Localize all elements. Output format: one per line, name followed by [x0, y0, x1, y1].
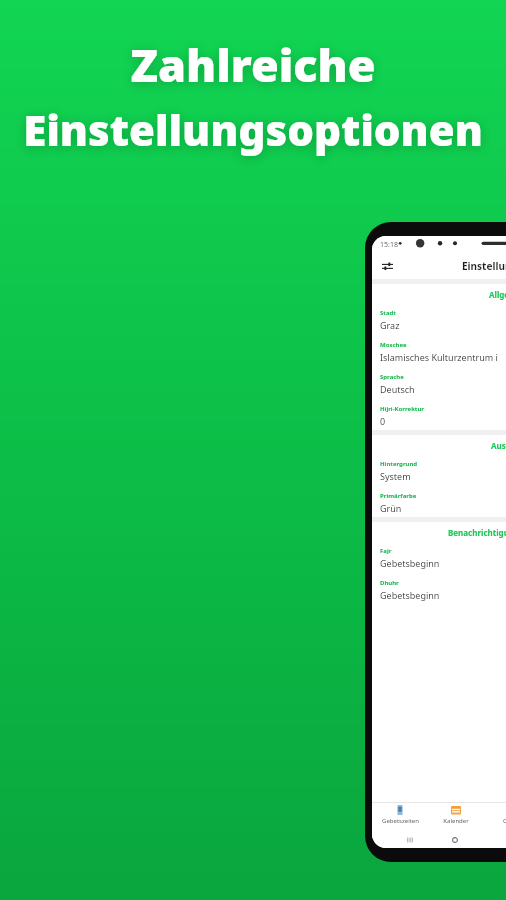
button[interactable]: Dhuhr — [372, 572, 506, 604]
button[interactable]: Recents — [403, 833, 417, 847]
staticText: Graz — [380, 319, 400, 331]
staticText: Gebetszeiten — [382, 817, 419, 825]
button[interactable]: Fajr — [372, 540, 506, 572]
button[interactable]: Gebetszeiten — [372, 802, 428, 832]
staticText: Zahlreiche — [130, 34, 376, 95]
staticText: Gebetsbeginn — [380, 557, 440, 569]
staticText: Sprache — [380, 373, 404, 381]
staticText: Qibla — [503, 817, 506, 825]
staticText: Einstellungen — [462, 259, 506, 273]
button[interactable]: Kalender — [428, 802, 483, 832]
staticText: Hintergrund — [380, 460, 418, 468]
button[interactable]: Stadt — [372, 302, 506, 334]
staticText: Fajr — [380, 547, 392, 555]
button[interactable]: Filter — [379, 258, 395, 274]
button[interactable]: Moschee — [372, 334, 506, 366]
staticText: Islamisches Kulturzentrum i — [380, 351, 498, 363]
button[interactable]: Primärfarbe — [372, 485, 506, 517]
staticText: Dhuhr — [380, 579, 399, 587]
staticText: 0 — [380, 415, 386, 427]
button[interactable]: Hijri-Korrektur — [372, 398, 506, 430]
staticText: Benachrichtigungen — [448, 527, 506, 538]
button[interactable]: Qibla — [483, 802, 506, 832]
staticText: Kalender — [443, 817, 469, 825]
staticText: Primärfarbe — [380, 492, 417, 500]
staticText: Grün — [380, 502, 402, 514]
staticText: 15:18 — [380, 240, 398, 250]
staticText: Stadt — [380, 309, 396, 317]
staticText: Moschee — [380, 341, 407, 349]
staticText: Deutsch — [380, 383, 415, 395]
staticText: Allgemein — [489, 289, 506, 300]
button[interactable]: Sprache — [372, 366, 506, 398]
button[interactable]: Hintergrund — [372, 453, 506, 485]
staticText: Aussehen — [491, 440, 506, 451]
staticText: Hijri-Korrektur — [380, 405, 425, 413]
button[interactable]: Home — [448, 833, 462, 847]
staticText: System — [380, 470, 411, 482]
staticText: Einstellungsoptionen — [23, 101, 483, 158]
staticText: Gebetsbeginn — [380, 589, 440, 601]
